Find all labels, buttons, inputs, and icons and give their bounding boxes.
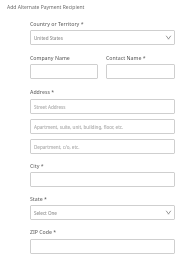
button[interactable]: Country or Territory selector: [30, 30, 175, 45]
button[interactable]: State selector: [30, 205, 175, 220]
button[interactable]: City input: [30, 172, 175, 187]
staticText: State *: [30, 195, 47, 202]
staticText: Country or Territory *: [30, 20, 84, 27]
staticText: Select One: [34, 210, 57, 216]
staticText: Add Alternate Payment Recipient: [7, 4, 85, 11]
staticText: Company Name: [30, 54, 70, 61]
staticText: ZIP Code *: [30, 228, 57, 235]
button[interactable]: Contact Name input: [106, 64, 175, 79]
button[interactable]: ZIP Code input: [30, 239, 175, 254]
button[interactable]: Department input: [30, 139, 175, 154]
staticText: City *: [30, 162, 44, 169]
staticText: Street Address: [34, 104, 66, 110]
button[interactable]: Street Address input: [30, 99, 175, 114]
staticText: Apartment, suite, unit, building, floor,…: [34, 124, 124, 130]
staticText: United States: [34, 35, 63, 41]
staticText: Address *: [30, 88, 55, 95]
staticText: Contact Name *: [106, 54, 146, 61]
staticText: Department, c/o, etc.: [34, 144, 80, 150]
button[interactable]: Apartment or suite input: [30, 119, 175, 134]
button[interactable]: Company Name input: [30, 64, 98, 79]
